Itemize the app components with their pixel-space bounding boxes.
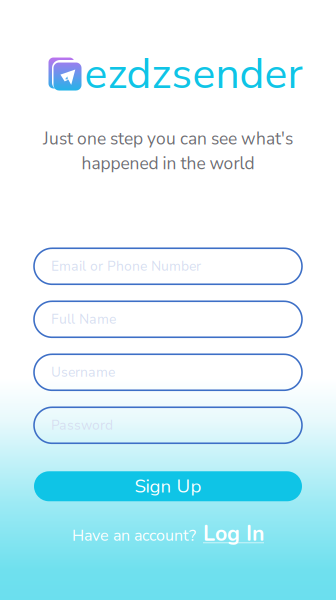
staticText: Sign Up	[134, 474, 201, 499]
button[interactable]: Full Name	[34, 301, 302, 337]
staticText: Password	[51, 416, 113, 434]
staticText: happened in the world	[81, 152, 254, 175]
staticText: Username	[51, 363, 115, 381]
staticText: Log In	[203, 519, 264, 548]
button[interactable]: Password	[34, 407, 302, 443]
staticText: ezdzsender	[84, 45, 302, 103]
staticText: Email or Phone Number	[51, 257, 201, 275]
button[interactable]: Email or Phone Number	[34, 248, 302, 284]
staticText: Full Name	[51, 310, 116, 328]
staticText: Just one step you can see what's	[43, 127, 293, 151]
button[interactable]: Log In	[203, 519, 264, 548]
button[interactable]: Sign Up	[34, 471, 302, 501]
staticText: Have an account?	[72, 525, 196, 546]
button[interactable]: Username	[34, 354, 302, 390]
